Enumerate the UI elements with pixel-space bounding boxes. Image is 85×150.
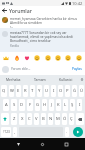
staticText: O bbox=[59, 88, 63, 94]
button[interactable]: Reaction 3 bbox=[23, 54, 31, 62]
button[interactable]: Shift bbox=[1, 113, 9, 125]
staticText: I bbox=[53, 88, 55, 94]
button[interactable]: Reaction 5 bbox=[44, 54, 52, 62]
staticText: 10:42 bbox=[72, 1, 83, 6]
button[interactable]: Voice input bbox=[79, 75, 85, 84]
button[interactable]: K bbox=[56, 99, 61, 111]
button[interactable]: Q bbox=[1, 85, 7, 97]
button[interactable]: I bbox=[77, 99, 82, 111]
button[interactable]: H bbox=[42, 99, 47, 111]
button[interactable]: Ğ bbox=[72, 85, 77, 97]
staticText: K bbox=[57, 102, 60, 108]
button[interactable]: Reaction 8 bbox=[75, 54, 83, 62]
staticText: Bonudhostt_ cimo tesekkur bbox=[10, 39, 51, 43]
staticText: I bbox=[79, 102, 81, 108]
button[interactable]: Reaction 6 bbox=[54, 54, 62, 62]
button[interactable]: S bbox=[11, 99, 17, 111]
staticText: Yorumlar bbox=[9, 7, 32, 14]
button[interactable]: Paylas bbox=[71, 66, 83, 72]
staticText: R bbox=[24, 88, 27, 94]
staticText: Z bbox=[13, 116, 16, 122]
staticText: D bbox=[20, 102, 24, 108]
staticText: hazirlanmak, elimdi ve yapilmasi olsa de… bbox=[10, 35, 73, 39]
staticText: Ö bbox=[63, 116, 67, 122]
staticText: . bbox=[66, 129, 68, 135]
button[interactable]: J bbox=[49, 99, 54, 111]
button[interactable]: W bbox=[9, 85, 14, 97]
staticText: C bbox=[28, 116, 31, 122]
button[interactable]: D bbox=[19, 99, 25, 111]
staticText: A bbox=[5, 102, 8, 108]
button[interactable]: Backspace bbox=[76, 113, 84, 125]
staticText: E bbox=[17, 88, 20, 94]
button[interactable]: Z bbox=[11, 113, 17, 125]
button[interactable]: ?123 bbox=[1, 127, 11, 137]
staticText: M bbox=[56, 116, 60, 122]
button[interactable]: Home bbox=[37, 139, 48, 150]
button[interactable]: Send bbox=[73, 127, 83, 137]
staticText: Q bbox=[2, 88, 6, 94]
staticText: B bbox=[42, 116, 45, 122]
staticText: memet_hyamzaa Gercekten harika bir olmus bbox=[10, 17, 77, 21]
staticText: Merhaba bbox=[6, 77, 21, 82]
button[interactable]: Ş bbox=[70, 99, 75, 111]
button[interactable]: G bbox=[35, 99, 40, 111]
staticText: J bbox=[51, 102, 53, 108]
button[interactable]: B bbox=[41, 113, 46, 125]
staticText: P bbox=[66, 88, 69, 94]
button[interactable]: Ç bbox=[69, 113, 74, 125]
staticText: L bbox=[64, 102, 67, 108]
staticText: W bbox=[10, 88, 14, 94]
staticText: H bbox=[43, 102, 47, 108]
button[interactable]: Reaction 4 bbox=[33, 54, 41, 62]
staticText: Paylas bbox=[72, 67, 82, 71]
button[interactable]: Merhaba bbox=[0, 75, 27, 84]
staticText: Yorum ekle... bbox=[11, 67, 31, 71]
staticText: Ğ bbox=[73, 88, 77, 94]
staticText: , bbox=[14, 129, 16, 135]
button[interactable]: , bbox=[13, 127, 17, 137]
button[interactable]: U bbox=[44, 85, 49, 97]
button[interactable]: Ü bbox=[79, 85, 84, 97]
button[interactable]: Ö bbox=[62, 113, 67, 125]
button[interactable]: O bbox=[58, 85, 63, 97]
staticText: T bbox=[31, 88, 34, 94]
button[interactable]: Reaction 1 bbox=[2, 54, 10, 62]
staticText: Y bbox=[38, 88, 41, 94]
button[interactable]: Y bbox=[37, 85, 42, 97]
button[interactable]: Tamam bbox=[27, 75, 53, 84]
staticText: Kullanici bbox=[59, 77, 73, 82]
button[interactable]: Back bbox=[13, 139, 24, 150]
button[interactable]: V bbox=[34, 113, 39, 125]
button[interactable]: M bbox=[55, 113, 60, 125]
button[interactable]: Recent apps bbox=[61, 139, 72, 150]
button[interactable]: P bbox=[65, 85, 70, 97]
button[interactable]: Reaction 7 bbox=[64, 54, 72, 62]
staticText: mestaa7777 Sonundan bir cok sey var bbox=[10, 31, 67, 35]
button[interactable]: . bbox=[65, 127, 69, 137]
staticText: Yanitla bbox=[10, 44, 19, 48]
button[interactable]: Back bbox=[0, 6, 9, 15]
staticText: Ş bbox=[71, 102, 74, 108]
button[interactable]: E bbox=[16, 85, 21, 97]
button[interactable]: Reaction 2 bbox=[13, 54, 21, 62]
button[interactable]: C bbox=[27, 113, 32, 125]
staticText: ?123 bbox=[3, 130, 10, 134]
button[interactable]: A bbox=[3, 99, 9, 111]
staticText: X bbox=[21, 116, 24, 122]
staticText: 1s bbox=[10, 26, 13, 28]
button[interactable]: I bbox=[51, 85, 56, 97]
button[interactable]: L bbox=[63, 99, 68, 111]
staticText: G bbox=[36, 102, 40, 108]
button[interactable]: N bbox=[48, 113, 53, 125]
button[interactable]: R bbox=[23, 85, 28, 97]
button[interactable]: X bbox=[19, 113, 25, 125]
staticText: F bbox=[29, 102, 32, 108]
staticText: Ç bbox=[70, 116, 73, 122]
button[interactable]: T bbox=[30, 85, 35, 97]
staticText: V bbox=[35, 116, 38, 122]
button[interactable]: Kullanici bbox=[53, 75, 79, 84]
staticText: U bbox=[45, 88, 49, 94]
button[interactable]: F bbox=[27, 99, 33, 111]
